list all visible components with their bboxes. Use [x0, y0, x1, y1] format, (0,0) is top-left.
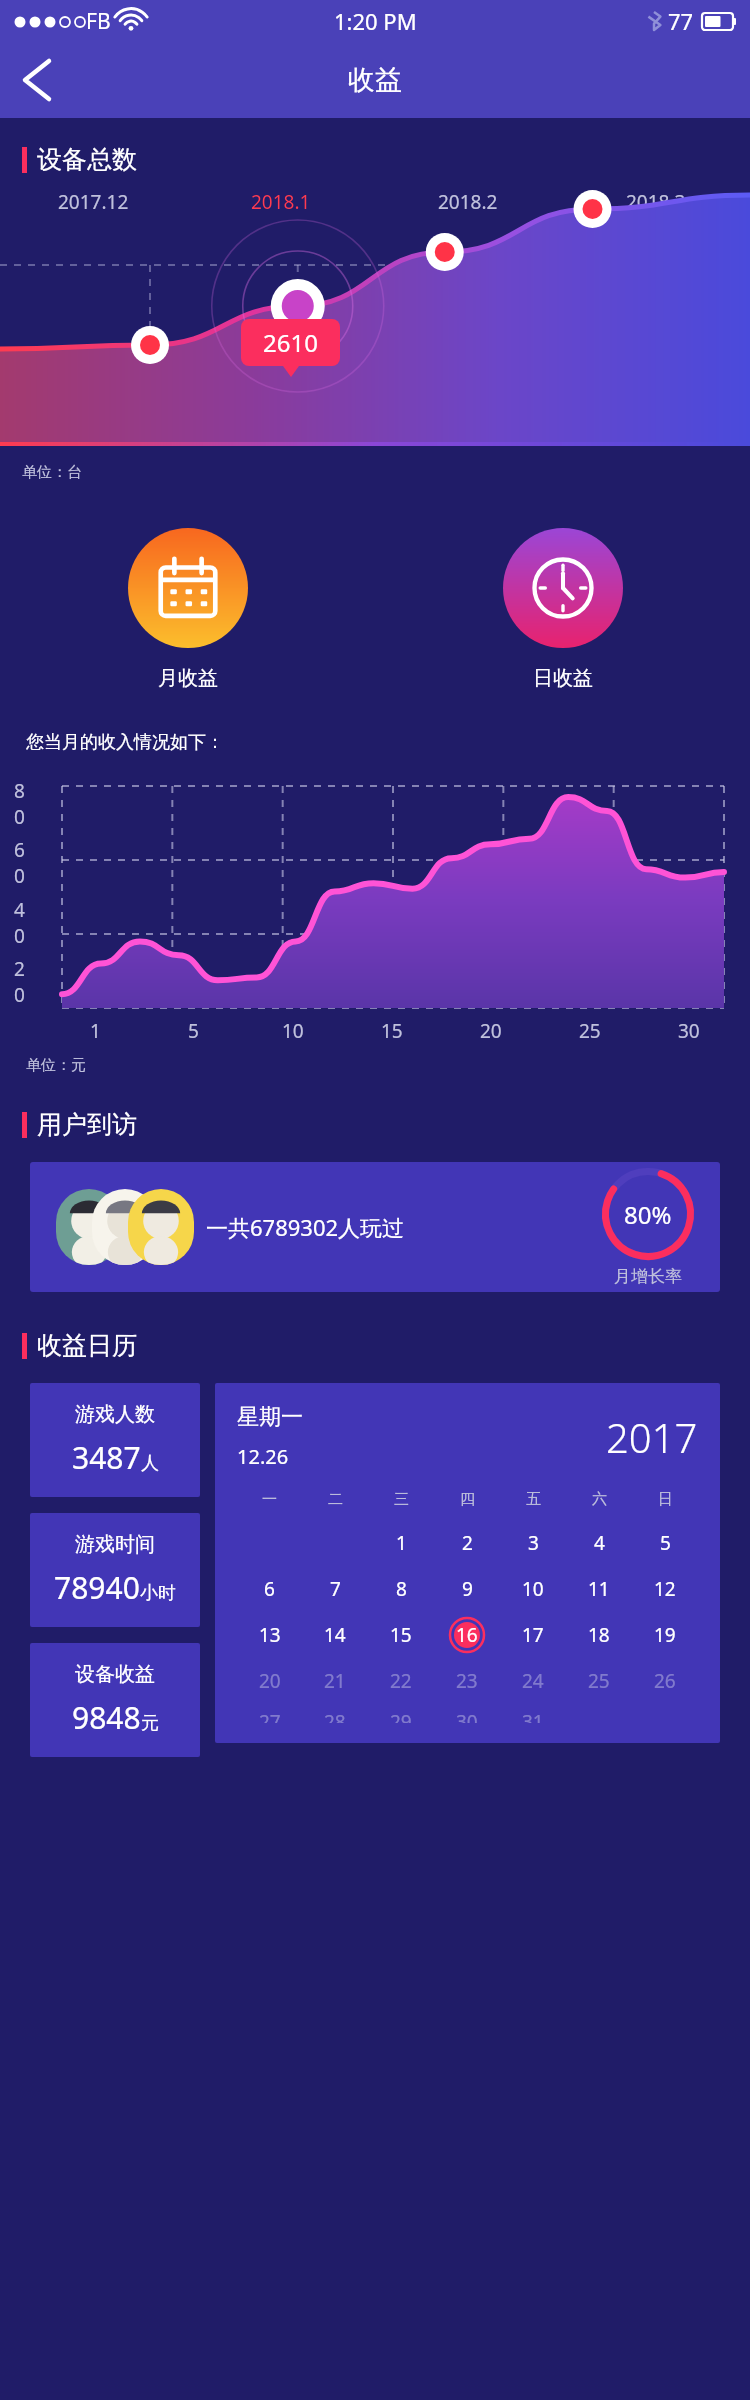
staticText: 9 — [462, 1576, 473, 1602]
staticText: 小时 — [140, 1582, 176, 1605]
staticText: 0 — [14, 863, 25, 889]
staticText: 星期一 — [237, 1403, 303, 1431]
staticText: 30 — [456, 1709, 478, 1723]
staticText: 设备收益 — [75, 1662, 155, 1687]
button[interactable]: Back — [8, 51, 66, 109]
staticText: 0 — [14, 923, 25, 949]
staticText: 用户到访 — [37, 1109, 137, 1140]
staticText: 三 — [394, 1490, 409, 1509]
staticText: FB — [86, 7, 111, 36]
staticText: 22 — [390, 1668, 412, 1694]
staticText: 2 — [462, 1530, 473, 1556]
staticText: 20 — [480, 1018, 502, 1044]
button[interactable]: 月收益 — [128, 528, 248, 691]
button[interactable]: 游戏时间 — [30, 1513, 200, 1627]
staticText: 2018.1 — [251, 189, 311, 215]
staticText: 五 — [526, 1490, 541, 1509]
staticText: 4 — [14, 897, 25, 923]
staticText: 12 — [654, 1576, 676, 1602]
staticText: 14 — [324, 1622, 346, 1648]
staticText: 单位：元 — [26, 1056, 86, 1075]
staticText: 13 — [259, 1622, 281, 1648]
staticText: 1:20 PM — [334, 6, 417, 36]
staticText: 0 — [14, 804, 25, 830]
staticText: 8 — [14, 778, 25, 804]
button[interactable]: 2610 — [263, 326, 318, 359]
staticText: 24 — [522, 1668, 544, 1694]
staticText: 11 — [588, 1576, 610, 1602]
staticText: 游戏时间 — [75, 1532, 155, 1557]
staticText: 21 — [324, 1668, 346, 1694]
staticText: 6 — [264, 1576, 275, 1602]
staticText: 2018.2 — [438, 189, 498, 215]
staticText: 77 — [668, 6, 694, 36]
staticText: 19 — [654, 1622, 676, 1648]
staticText: 31 — [522, 1709, 544, 1723]
staticText: 二 — [328, 1490, 343, 1509]
staticText: 1 — [90, 1018, 101, 1044]
staticText: 80% — [624, 1198, 672, 1231]
staticText: 3 — [528, 1530, 539, 1556]
staticText: 收益 — [348, 63, 402, 97]
button[interactable]: 日收益 — [503, 528, 623, 691]
staticText: 15 — [381, 1018, 403, 1044]
staticText: 四 — [460, 1490, 475, 1509]
staticText: 2018.3 — [626, 189, 686, 215]
staticText: 18 — [588, 1622, 610, 1648]
staticText: 29 — [390, 1709, 412, 1723]
staticText: 元 — [141, 1712, 159, 1735]
staticText: 0 — [14, 982, 25, 1008]
staticText: 1 — [396, 1530, 407, 1556]
staticText: 25 — [588, 1668, 610, 1694]
staticText: 20 — [259, 1668, 281, 1694]
staticText: 5 — [188, 1018, 199, 1044]
staticText: 您当月的收入情况如下： — [26, 731, 224, 754]
staticText: 单位：台 — [22, 463, 82, 482]
staticText: 9848 — [72, 1697, 141, 1738]
staticText: 3487 — [72, 1437, 141, 1478]
staticText: 10 — [282, 1018, 304, 1044]
staticText: 一 — [262, 1490, 277, 1509]
staticText: 2610 — [263, 326, 318, 359]
staticText: 6 — [14, 837, 25, 863]
staticText: 游戏人数 — [75, 1402, 155, 1427]
staticText: 10 — [522, 1576, 544, 1602]
staticText: 30 — [678, 1018, 700, 1044]
staticText: 25 — [579, 1018, 601, 1044]
staticText: 15 — [390, 1622, 412, 1648]
staticText: 8 — [396, 1576, 407, 1602]
staticText: 78940 — [54, 1567, 140, 1608]
staticText: 日收益 — [533, 666, 593, 691]
button[interactable]: 星期一 — [215, 1383, 720, 1743]
button[interactable]: 游戏人数 — [30, 1383, 200, 1497]
staticText: 5 — [660, 1530, 671, 1556]
staticText: 28 — [324, 1709, 346, 1723]
button[interactable]: 一共6789302人玩过 — [30, 1162, 720, 1292]
staticText: 月增长率 — [614, 1266, 682, 1287]
staticText: 人 — [141, 1452, 159, 1475]
staticText: 17 — [522, 1622, 544, 1648]
staticText: 日 — [658, 1490, 673, 1509]
staticText: 27 — [259, 1709, 281, 1723]
staticText: 23 — [456, 1668, 478, 1694]
staticText: 六 — [592, 1490, 607, 1509]
button[interactable]: 设备收益 — [30, 1643, 200, 1757]
staticText: 一共6789302人玩过 — [206, 1212, 602, 1242]
staticText: 26 — [654, 1668, 676, 1694]
staticText: 收益日历 — [37, 1330, 137, 1361]
staticText: 7 — [330, 1576, 341, 1602]
staticText: 设备总数 — [37, 144, 137, 175]
staticText: 2017 — [606, 1410, 698, 1464]
staticText: 4 — [594, 1530, 605, 1556]
staticText: 12.26 — [237, 1443, 289, 1470]
staticText: 2017.12 — [58, 189, 129, 215]
staticText: 16 — [456, 1622, 478, 1648]
staticText: 2 — [14, 956, 25, 982]
staticText: 月收益 — [158, 666, 218, 691]
